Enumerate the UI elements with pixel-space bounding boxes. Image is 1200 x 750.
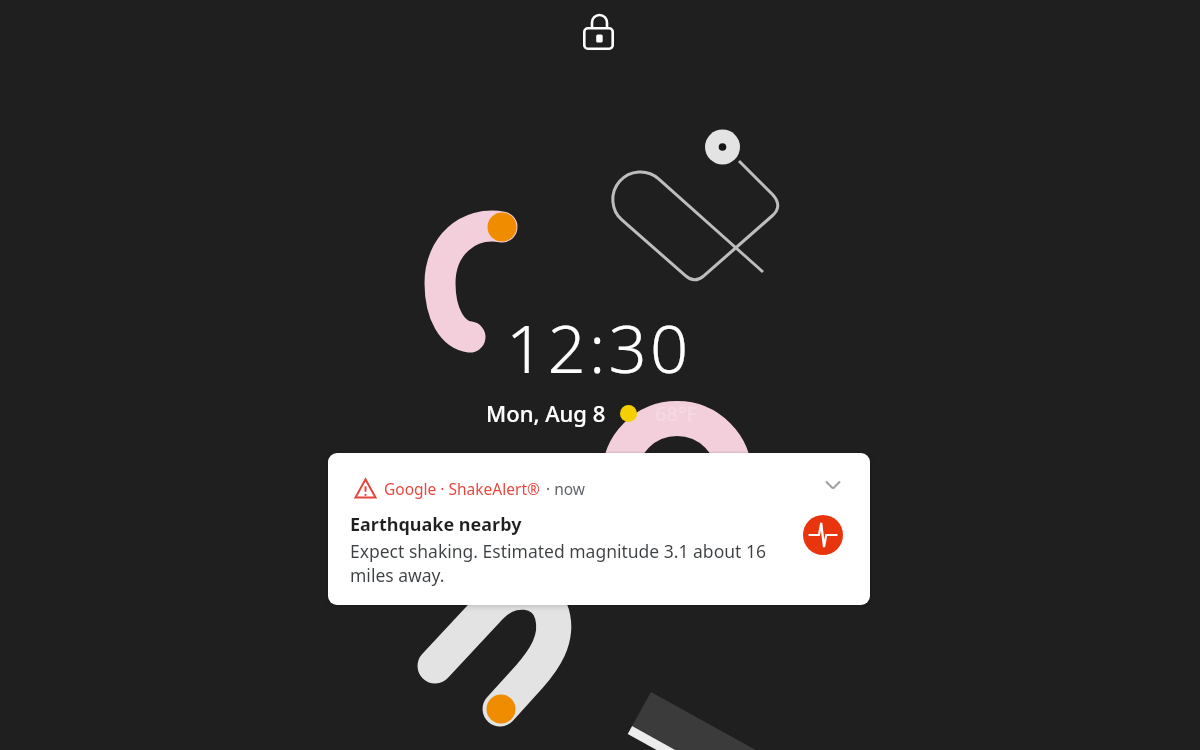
staticText: 12:30 xyxy=(506,301,692,392)
staticText: Google · ShakeAlert® xyxy=(384,478,540,499)
button[interactable]: Expand notification xyxy=(818,470,848,500)
staticText: · now xyxy=(546,478,586,499)
button[interactable]: 12:30 xyxy=(506,301,692,392)
staticText: Mon, Aug 8 xyxy=(486,398,606,428)
button[interactable]: Mon, Aug 8 xyxy=(486,398,697,428)
button[interactable]: Locked xyxy=(580,10,620,50)
button[interactable]: ShakeAlert app icon xyxy=(803,515,843,555)
staticText: Earthquake nearby xyxy=(350,512,522,537)
button[interactable]: Google · ShakeAlert® xyxy=(328,453,870,605)
staticText: Expect shaking. Estimated magnitude 3.1 … xyxy=(350,539,774,587)
staticText: 68°F xyxy=(655,400,697,427)
